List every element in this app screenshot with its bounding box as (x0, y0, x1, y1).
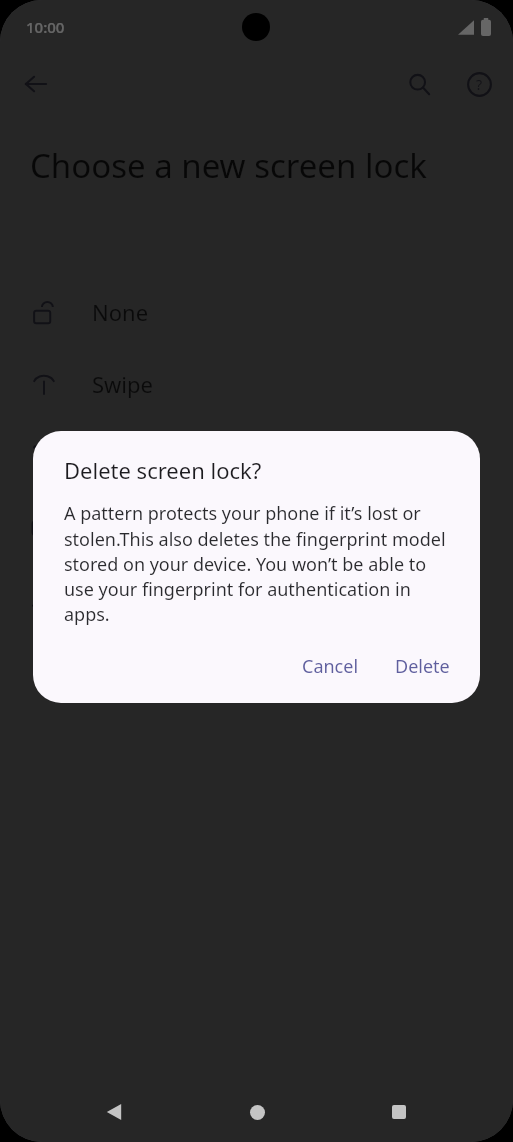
button[interactable]: Help (455, 60, 503, 108)
button[interactable]: Password (0, 564, 513, 636)
button[interactable]: Search (395, 60, 443, 108)
staticText: Cancel (302, 654, 359, 679)
staticText: Pattern (92, 441, 169, 471)
button[interactable]: Pattern (0, 420, 513, 492)
staticText: PIN (92, 513, 130, 543)
button[interactable]: Cancel (288, 644, 373, 689)
button[interactable]: PIN (0, 492, 513, 564)
staticText: 10:00 (26, 17, 65, 37)
staticText: Swipe (92, 369, 153, 399)
button[interactable]: Home (229, 1084, 285, 1140)
button[interactable]: Recent apps (371, 1084, 427, 1140)
staticText: Choose a new screen lock (30, 143, 473, 188)
button[interactable]: Back (86, 1084, 142, 1140)
staticText: Delete (395, 654, 450, 679)
button[interactable]: Back (12, 60, 60, 108)
staticText: None (92, 297, 149, 327)
staticText: Password (92, 585, 192, 615)
staticText: Delete screen lock? (64, 455, 262, 485)
button[interactable]: Delete (381, 644, 464, 689)
staticText: A pattern protects your phone if it’s lo… (64, 501, 456, 626)
staticText: ? (476, 75, 483, 94)
